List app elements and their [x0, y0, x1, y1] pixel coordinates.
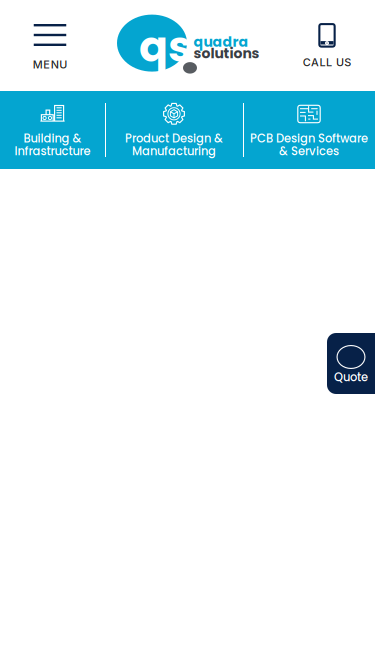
staticText: quadra — [193, 32, 248, 52]
staticText: MENU — [33, 58, 67, 71]
button[interactable]: CALL US — [287, 0, 367, 82]
staticText: Infrastructure — [14, 143, 90, 159]
button[interactable]: Quote — [327, 333, 375, 394]
staticText: & Services — [279, 143, 339, 159]
button[interactable]: PCB Design Software — [243, 91, 375, 169]
staticText: solutions — [193, 44, 259, 63]
staticText: Manufacturing — [132, 143, 216, 159]
button[interactable]: Building & — [0, 91, 105, 169]
button[interactable]: MENU — [11, 0, 89, 82]
staticText: CALL US — [303, 56, 351, 69]
staticText: Building & — [23, 131, 81, 147]
staticText: Quote — [334, 369, 368, 385]
staticText: qs — [139, 17, 192, 76]
staticText: Product Design & — [125, 131, 223, 147]
button[interactable]: Product Design & — [105, 91, 243, 169]
staticText: PCB Design Software — [250, 131, 368, 147]
